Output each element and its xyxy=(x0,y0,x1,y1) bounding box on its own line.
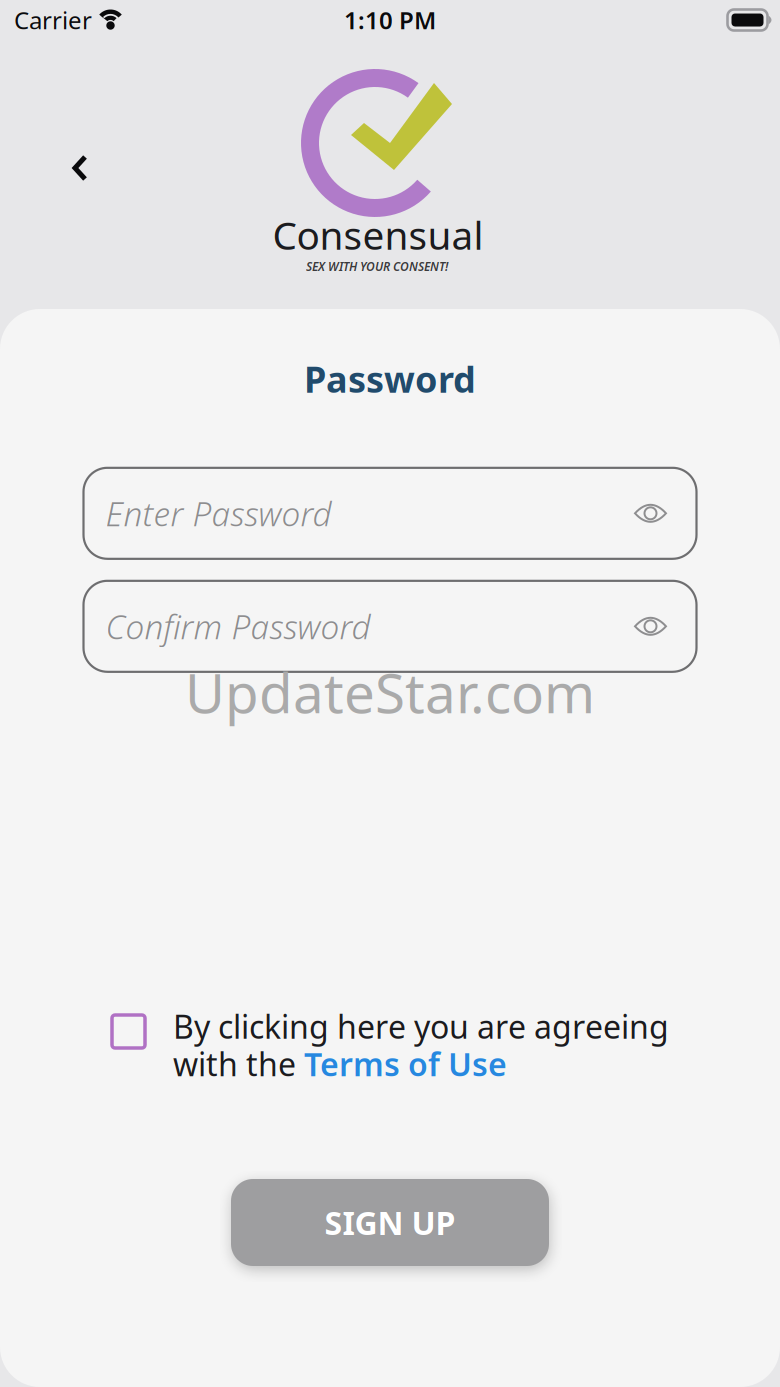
button[interactable]: Terms of Use xyxy=(304,1042,507,1085)
button[interactable]: Show Confirm Password xyxy=(625,607,675,645)
staticText: Confirm Password xyxy=(105,604,370,649)
button[interactable]: Back xyxy=(56,139,104,197)
staticText: Consensual xyxy=(272,209,483,260)
staticText: with the xyxy=(173,1042,304,1085)
staticText: Password xyxy=(304,355,476,403)
staticText: UpdateStar.com xyxy=(185,656,595,728)
staticText: 1:10 PM xyxy=(344,4,436,36)
button[interactable]: Agree to Terms of Use xyxy=(102,1005,155,1058)
button[interactable]: Show Enter Password xyxy=(625,494,675,532)
staticText: Enter Password xyxy=(105,491,331,536)
button[interactable]: SIGN UP xyxy=(231,1179,549,1266)
staticText: Terms of Use xyxy=(304,1042,507,1085)
staticText: Carrier xyxy=(14,4,92,36)
staticText: SIGN UP xyxy=(324,1201,455,1244)
staticText: SEX WITH YOUR CONSENT! xyxy=(306,258,448,274)
staticText: By clicking here you are agreeing xyxy=(173,1005,669,1047)
